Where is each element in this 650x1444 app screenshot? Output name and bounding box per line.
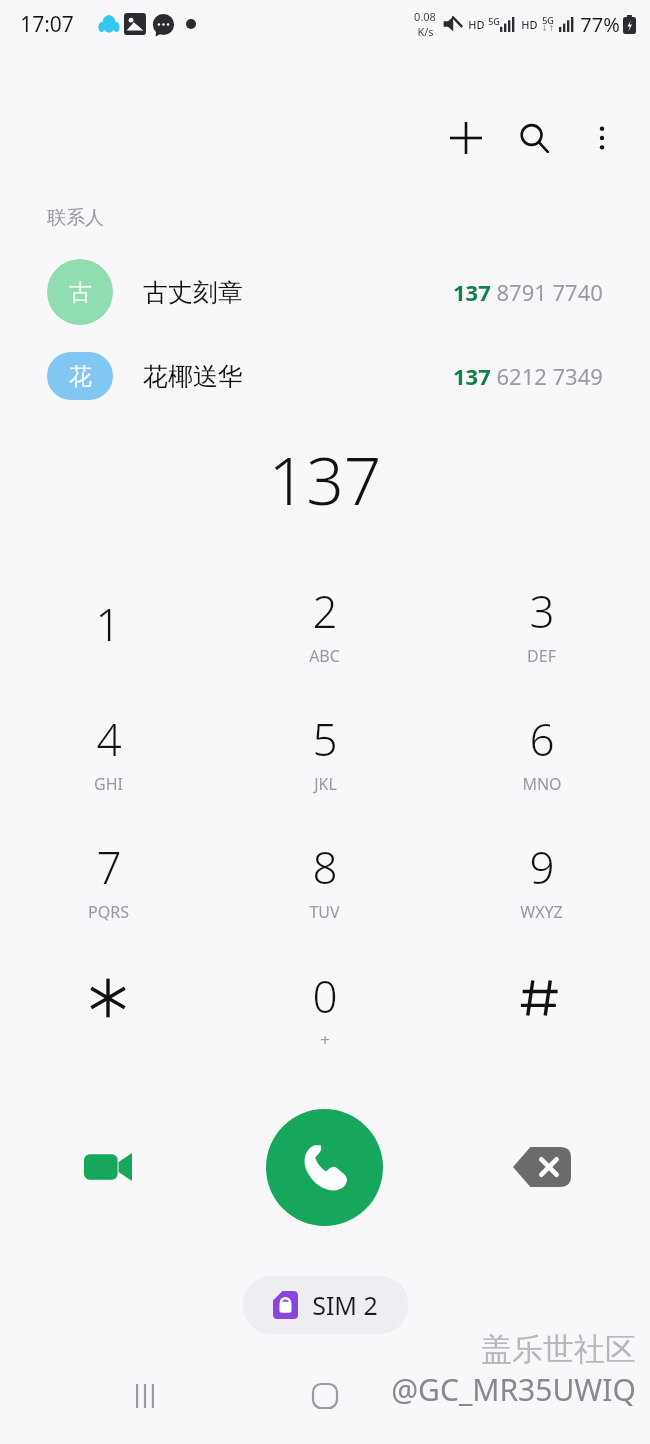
staticText: 6 xyxy=(529,709,555,769)
button[interactable]: 0 xyxy=(216,944,433,1072)
staticText: 5G xyxy=(542,14,554,26)
button[interactable]: 4 xyxy=(0,688,216,816)
staticText: HD xyxy=(468,17,485,32)
staticText: 5G xyxy=(488,15,500,27)
button[interactable]: Star xyxy=(0,944,216,1072)
button[interactable]: Backspace xyxy=(433,1100,650,1234)
staticText: WXYZ xyxy=(520,901,563,923)
staticText: 9 xyxy=(529,837,555,897)
staticText: 7 xyxy=(96,837,122,897)
staticText: JKL xyxy=(314,773,337,795)
staticText: 3 xyxy=(529,581,555,641)
staticText: 77% xyxy=(580,11,620,38)
button[interactable]: 2 xyxy=(216,560,433,688)
staticText: 8 xyxy=(312,837,338,897)
button[interactable]: More options xyxy=(568,104,636,172)
staticText: 盖乐世社区 xyxy=(481,1330,636,1369)
button[interactable]: Home xyxy=(292,1363,358,1429)
staticText: PQRS xyxy=(88,901,129,923)
staticText: 花 xyxy=(69,362,92,391)
button[interactable]: 古 xyxy=(0,254,650,330)
button[interactable]: 5 xyxy=(216,688,433,816)
staticText: MNO xyxy=(522,773,562,795)
staticText: 1 xyxy=(95,594,121,654)
staticText: DEF xyxy=(527,645,556,667)
button[interactable]: SIM 2 xyxy=(243,1276,408,1334)
staticText: 古丈刻章 xyxy=(143,277,243,308)
button[interactable]: 花 xyxy=(0,352,650,400)
staticText: 5 xyxy=(312,709,338,769)
button[interactable]: Recents xyxy=(112,1363,178,1429)
button[interactable]: 6 xyxy=(433,688,650,816)
staticText: GHI xyxy=(94,773,123,795)
button[interactable]: 1 xyxy=(0,560,216,688)
button[interactable]: 3 xyxy=(433,560,650,688)
button[interactable]: Call xyxy=(266,1109,383,1226)
staticText: 古 xyxy=(69,278,92,307)
button[interactable]: Video call xyxy=(0,1100,216,1234)
staticText: HD xyxy=(521,17,538,32)
staticText: TUV xyxy=(309,901,340,923)
button[interactable]: Add contact xyxy=(432,104,500,172)
staticText: @GC_MR35UWIQ xyxy=(391,1369,636,1410)
button[interactable]: Search xyxy=(500,104,568,172)
staticText: 137 8791 7740 xyxy=(453,277,603,307)
staticText: 联系人 xyxy=(47,206,104,230)
staticText: 17:07 xyxy=(20,10,74,39)
staticText: 137 xyxy=(268,434,382,524)
staticText: ↓↑ xyxy=(541,24,555,33)
staticText: ABC xyxy=(309,645,340,667)
staticText: 0 xyxy=(312,966,338,1026)
staticText: 花椰送华 xyxy=(143,361,243,392)
staticText: 4 xyxy=(96,709,122,769)
staticText: 0.08 xyxy=(414,9,436,24)
button[interactable]: 7 xyxy=(0,816,216,944)
button[interactable]: 8 xyxy=(216,816,433,944)
staticText: + xyxy=(320,1028,330,1051)
staticText: SIM 2 xyxy=(312,1288,378,1322)
staticText: K/s xyxy=(417,24,434,39)
button[interactable]: Pound xyxy=(433,944,650,1072)
button[interactable]: 9 xyxy=(433,816,650,944)
staticText: 137 6212 7349 xyxy=(453,361,603,391)
staticText: 2 xyxy=(312,581,338,641)
